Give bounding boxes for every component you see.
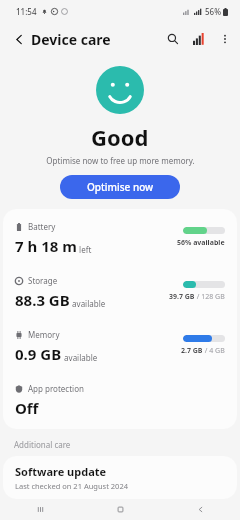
staticText: Software update (15, 464, 107, 479)
staticText: / 128 GB (195, 292, 225, 302)
staticText: 56% (205, 6, 221, 17)
button[interactable]: App protection (3, 373, 237, 427)
button[interactable]: Optimise now (60, 175, 180, 199)
button[interactable]: Back (8, 28, 30, 50)
staticText: 56% available (177, 238, 225, 248)
staticText: 39.7 GB (169, 292, 195, 302)
button[interactable]: More options (212, 26, 238, 52)
button[interactable]: Memory (3, 319, 237, 373)
staticText: App protection (28, 383, 84, 394)
button[interactable]: Recent apps (0, 499, 80, 520)
staticText: 2.7 GB (181, 346, 203, 356)
staticText: left (77, 244, 92, 255)
staticText: Storage (28, 275, 58, 286)
staticText: 11:54 (16, 6, 37, 17)
staticText: Off (15, 398, 39, 418)
button[interactable]: Back (160, 499, 240, 520)
staticText: Good (91, 122, 149, 152)
staticText: Battery (28, 221, 56, 232)
staticText: Optimise now (87, 180, 154, 194)
staticText: 0.9 GB (15, 344, 62, 364)
button[interactable]: Search (160, 26, 186, 52)
button[interactable]: Storage (3, 265, 237, 319)
staticText: 88.3 GB (15, 290, 70, 310)
staticText: Optimise now to free up more memory. (46, 155, 195, 166)
button[interactable]: Diagnostics (186, 26, 212, 52)
staticText: available (70, 298, 106, 309)
staticText: Last checked on 21 August 2024 (15, 481, 128, 491)
staticText: available (62, 352, 98, 363)
staticText: / 4 GB (203, 346, 225, 356)
button[interactable]: Battery (3, 211, 237, 265)
staticText: Memory (28, 329, 60, 340)
staticText: 7 h 18 m (15, 236, 77, 256)
staticText: Additional care (14, 439, 71, 450)
button[interactable]: Software update (3, 456, 237, 499)
staticText: Device care (31, 30, 111, 49)
button[interactable]: Home (80, 499, 160, 520)
